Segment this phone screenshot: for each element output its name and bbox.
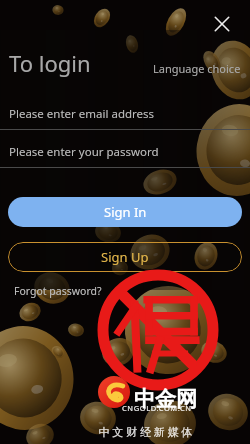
button[interactable]: Language choice bbox=[153, 61, 241, 78]
button[interactable]: Close bbox=[208, 10, 236, 38]
button[interactable]: Please enter email address bbox=[0, 106, 250, 130]
button[interactable]: Sign Up bbox=[8, 242, 242, 272]
staticText: Please enter your password bbox=[9, 144, 159, 160]
staticText: 中金网 bbox=[134, 386, 197, 412]
staticText: Forgot password? bbox=[14, 284, 102, 298]
staticText: 中 文 财 经 新 媒 体 bbox=[98, 424, 193, 439]
staticText: Sign Up bbox=[101, 248, 149, 266]
button[interactable]: Sign In bbox=[8, 197, 242, 227]
staticText: Language choice bbox=[153, 61, 241, 76]
staticText: Please enter email address bbox=[9, 106, 155, 122]
staticText: Sign In bbox=[104, 203, 147, 221]
staticText: CNGOLD.COM.CN bbox=[122, 403, 192, 413]
button[interactable]: Please enter your password bbox=[0, 144, 250, 168]
button[interactable]: Forgot password? bbox=[14, 282, 102, 300]
staticText: To login bbox=[9, 48, 91, 78]
